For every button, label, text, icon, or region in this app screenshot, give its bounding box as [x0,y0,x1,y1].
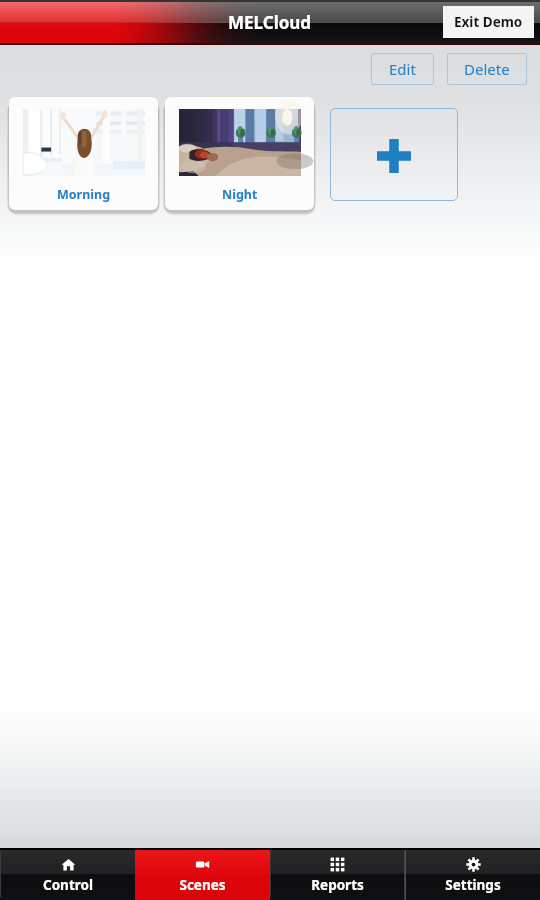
staticText: Reports [311,876,364,894]
button[interactable]: Reports [270,848,405,900]
staticText: Morning [57,186,111,203]
button[interactable]: Scenes [135,848,270,900]
staticText: Scenes [179,876,226,894]
button[interactable]: Exit Demo [443,6,534,38]
button[interactable]: Morning [9,97,158,210]
staticText: Control [43,876,93,894]
staticText: Delete [464,59,510,79]
button[interactable]: Add scene [330,108,458,201]
button[interactable]: Settings [405,848,540,900]
button[interactable]: Edit [371,53,434,85]
staticText: Night [222,186,258,203]
staticText: MELCloud [228,11,312,34]
staticText: Settings [445,876,501,894]
button[interactable]: Night [165,97,314,210]
staticText: Exit Demo [454,13,523,31]
button[interactable]: Delete [447,53,527,85]
staticText: Edit [389,59,416,79]
button[interactable]: Control [0,848,135,900]
